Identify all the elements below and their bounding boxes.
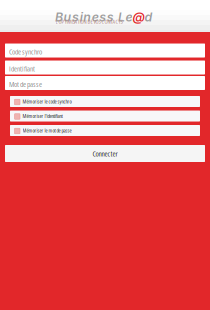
- staticText: Mémoriser le mot de passe: [22, 127, 71, 134]
- button[interactable]: Mémoriser le mot de passe: [10, 125, 200, 136]
- staticText: Mot de passe: [9, 79, 42, 89]
- staticText: L'OPTIMISATION DE VOS CONTACTS: [55, 18, 122, 25]
- button[interactable]: Mémoriser l'identifiant: [10, 110, 200, 121]
- staticText: Business Le: [55, 9, 132, 24]
- button[interactable]: Identifiant: [5, 60, 205, 74]
- staticText: @: [132, 9, 144, 24]
- button[interactable]: Connecter: [5, 145, 205, 162]
- staticText: Code synchro: [9, 46, 42, 57]
- button[interactable]: Mot de passe: [5, 76, 205, 90]
- staticText: Identifiant: [9, 63, 35, 74]
- staticText: Mémoriser l'identifiant: [22, 112, 62, 120]
- button[interactable]: Code synchro: [5, 43, 205, 57]
- staticText: Connecter: [92, 148, 117, 159]
- button[interactable]: Mémoriser le code synchro: [10, 96, 200, 107]
- staticText: Mémoriser le code synchro: [22, 98, 71, 105]
- staticText: d: [144, 9, 152, 24]
